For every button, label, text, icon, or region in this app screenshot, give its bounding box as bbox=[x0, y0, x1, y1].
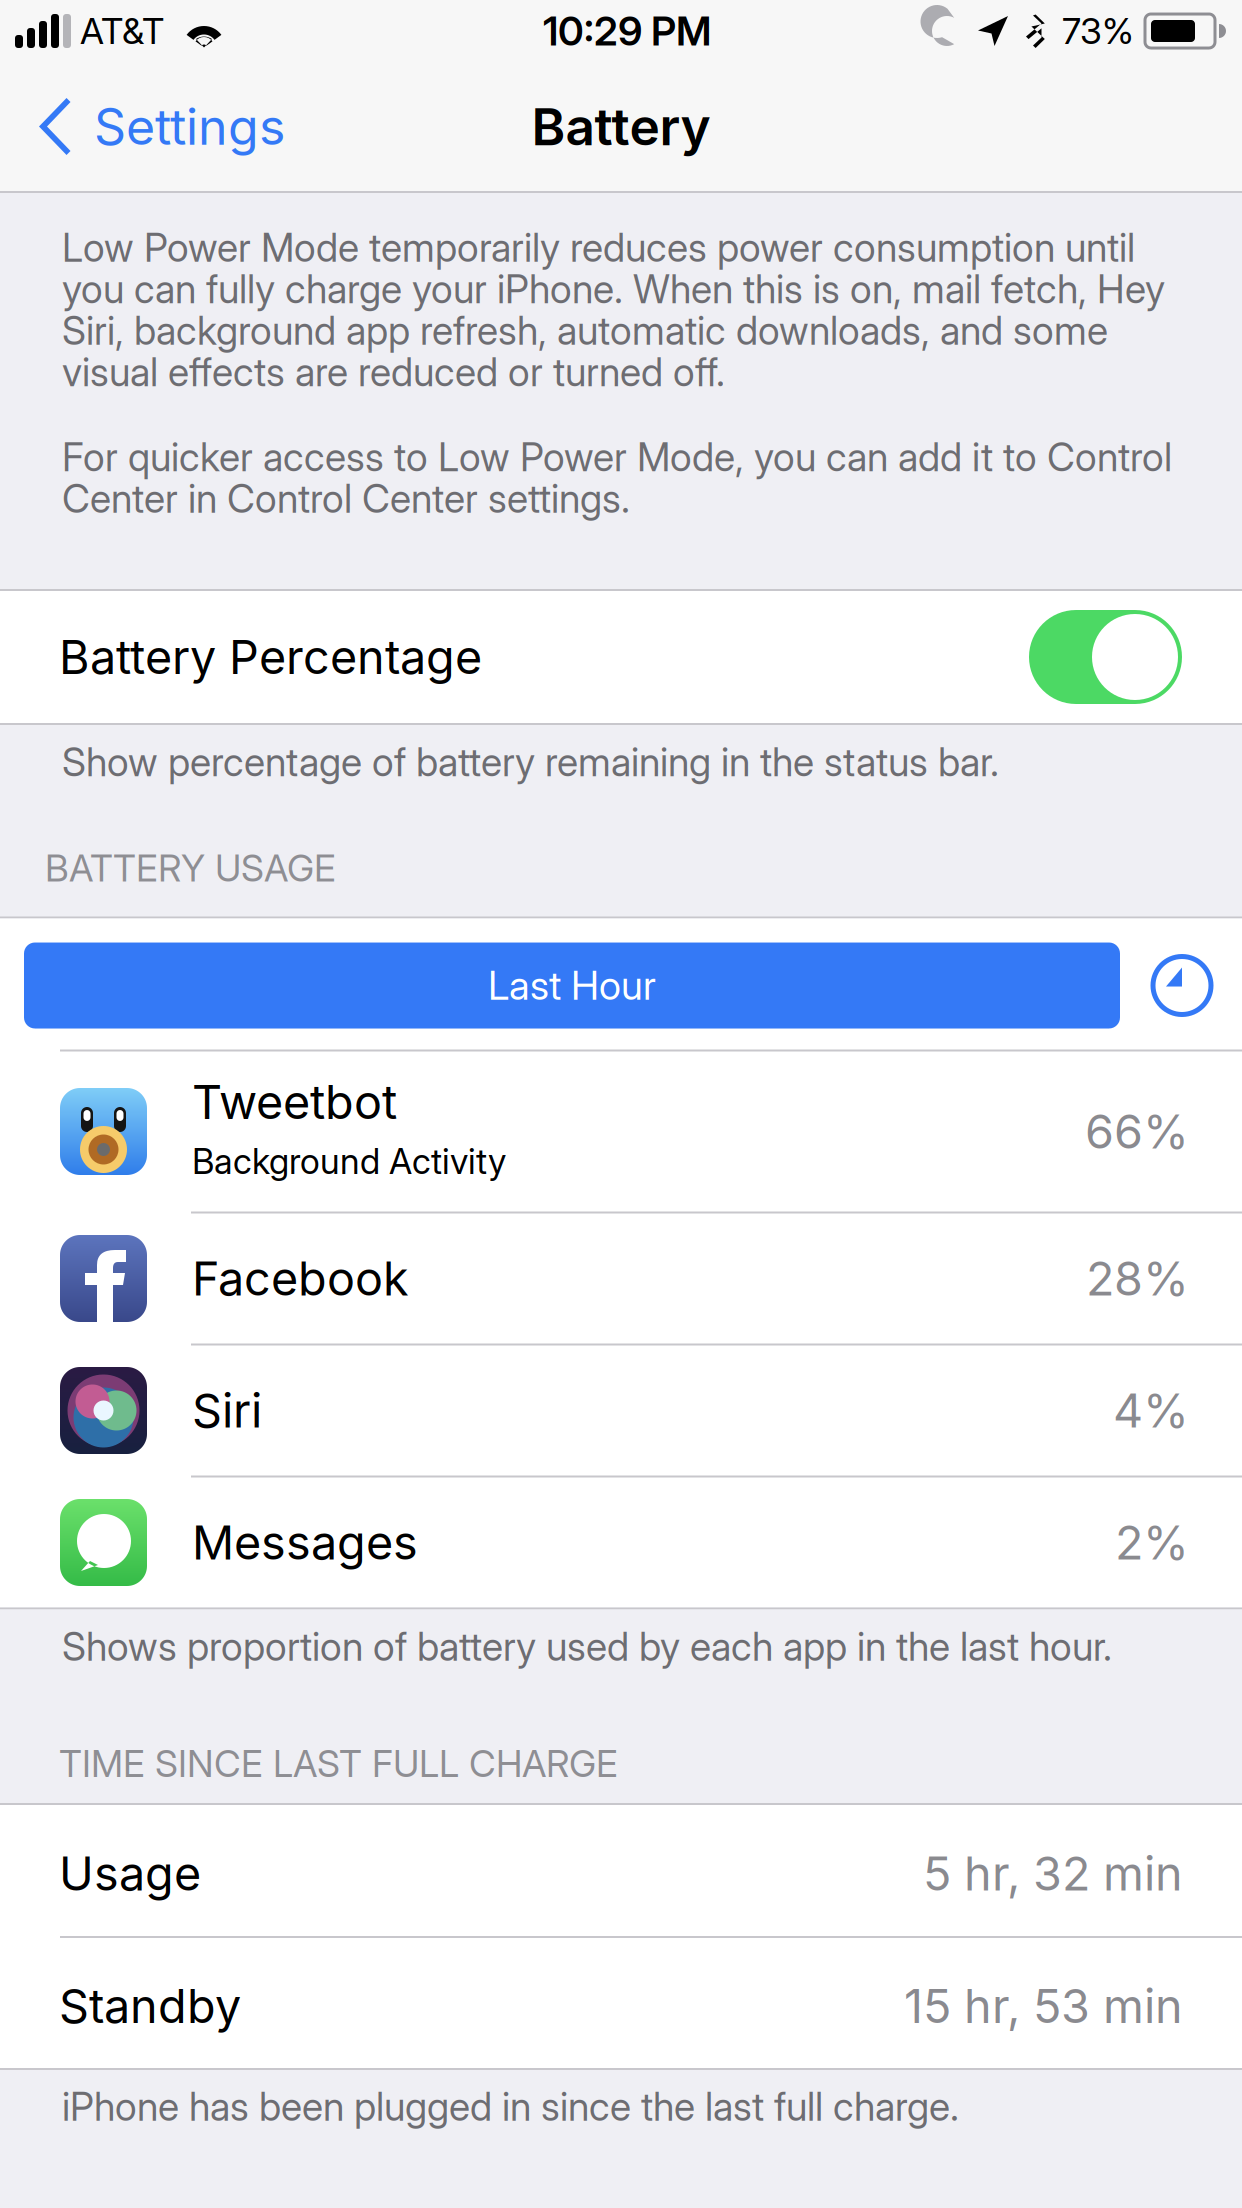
staticText: you can fully charge your iPhone. When t… bbox=[62, 266, 1165, 313]
button[interactable]: Messages bbox=[0, 1477, 1242, 1607]
staticText: Tweetbot bbox=[192, 1074, 397, 1130]
button[interactable]: Standby bbox=[0, 1938, 1242, 2068]
staticText: Standby bbox=[59, 1978, 241, 2034]
staticText: 15 hr, 53 min bbox=[904, 1978, 1183, 2034]
staticText: 10:29 PM bbox=[543, 7, 711, 55]
staticText: iPhone has been plugged in since the las… bbox=[62, 2083, 959, 2130]
button[interactable]: Usage bbox=[0, 1805, 1242, 1936]
staticText: TIME SINCE LAST FULL CHARGE bbox=[59, 1741, 618, 1786]
staticText: Battery Percentage bbox=[59, 629, 482, 685]
staticText: Siri, background app refresh, automatic … bbox=[62, 307, 1108, 354]
staticText: Usage bbox=[59, 1845, 201, 1902]
staticText: Center in Control Center settings. bbox=[62, 475, 630, 522]
staticText: 73% bbox=[1062, 9, 1134, 53]
staticText: BATTERY USAGE bbox=[45, 846, 336, 890]
staticText: Messages bbox=[192, 1514, 418, 1571]
staticText: Background Activity bbox=[192, 1140, 506, 1182]
staticText: Settings bbox=[94, 96, 285, 157]
staticText: 2% bbox=[1115, 1514, 1189, 1571]
staticText: AT&T bbox=[80, 9, 164, 53]
button[interactable]: Battery Percentage bbox=[0, 591, 1242, 723]
staticText: Siri bbox=[192, 1382, 262, 1439]
staticText: 4% bbox=[1113, 1382, 1189, 1439]
staticText: 5 hr, 32 min bbox=[923, 1845, 1183, 1902]
button[interactable]: Facebook bbox=[0, 1213, 1242, 1343]
staticText: Show percentage of battery remaining in … bbox=[62, 739, 999, 786]
staticText: 66% bbox=[1085, 1103, 1189, 1160]
staticText: Battery bbox=[531, 95, 710, 157]
button[interactable]: Last days bbox=[1151, 954, 1213, 1016]
button[interactable]: Settings bbox=[0, 62, 305, 191]
button[interactable]: Tweetbot bbox=[0, 1051, 1242, 1211]
staticText: Last Hour bbox=[488, 962, 656, 1009]
button[interactable]: Last Hour bbox=[24, 942, 1120, 1028]
button[interactable]: Siri bbox=[0, 1345, 1242, 1475]
staticText: 28% bbox=[1086, 1250, 1189, 1307]
staticText: For quicker access to Low Power Mode, yo… bbox=[62, 434, 1172, 481]
staticText: Shows proportion of battery used by each… bbox=[62, 1623, 1112, 1670]
staticText: visual effects are reduced or turned off… bbox=[62, 349, 725, 396]
staticText: Facebook bbox=[192, 1250, 409, 1307]
staticText: Low Power Mode temporarily reduces power… bbox=[62, 224, 1135, 271]
